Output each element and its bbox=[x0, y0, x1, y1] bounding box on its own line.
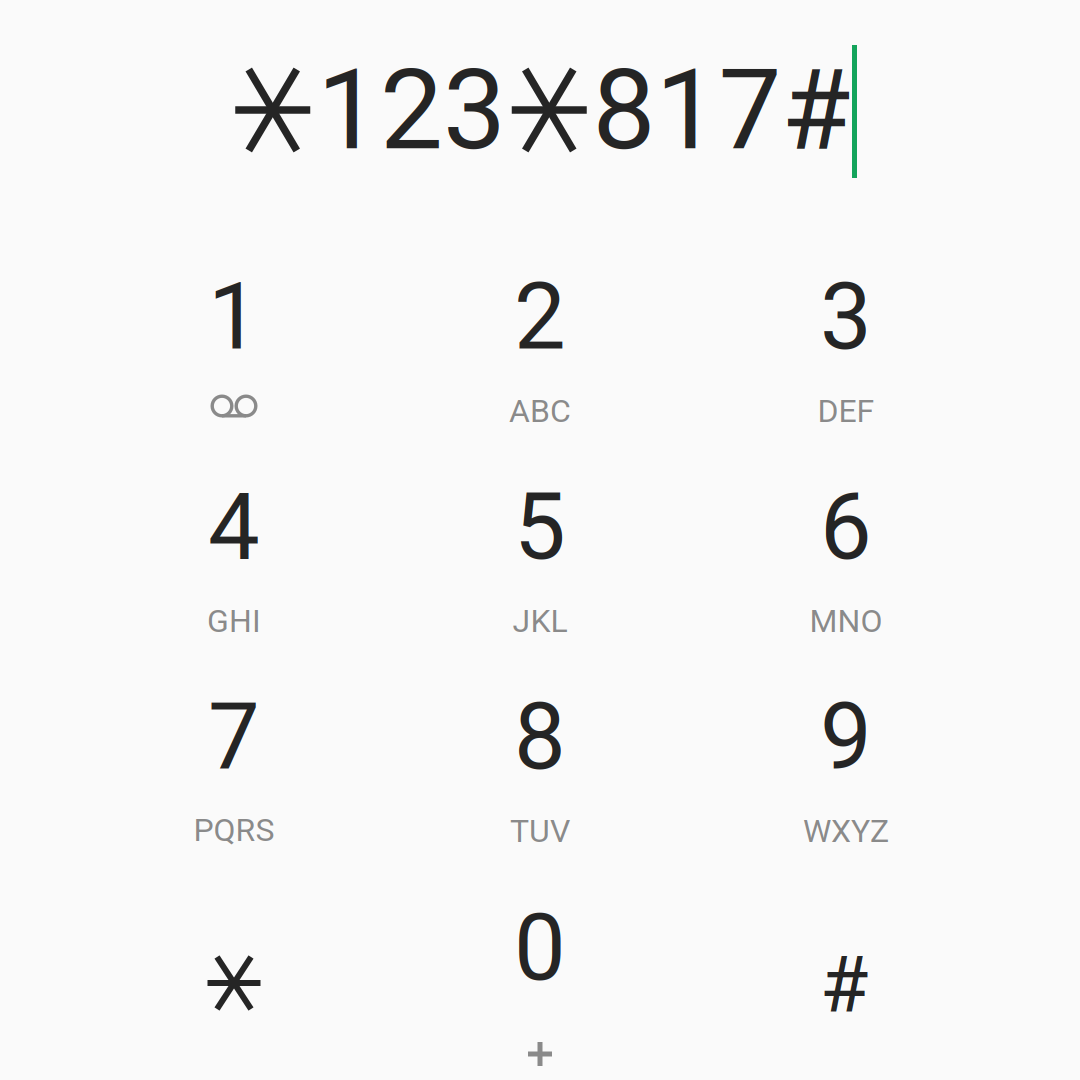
staticText: 7 bbox=[208, 683, 260, 791]
button[interactable]: 5 JKL bbox=[387, 423, 693, 633]
button[interactable]: 8 TUV bbox=[387, 633, 693, 843]
staticText: 4 bbox=[208, 473, 260, 581]
staticText: TUV bbox=[510, 812, 570, 850]
staticText: # bbox=[820, 939, 868, 1031]
button[interactable]: Pound bbox=[693, 843, 999, 1053]
staticText: 3 bbox=[820, 263, 872, 371]
staticText: MNO bbox=[809, 602, 882, 640]
button[interactable]: 0 Plus bbox=[387, 843, 693, 1053]
staticText: 1 bbox=[208, 263, 260, 371]
staticText: PQRS bbox=[193, 811, 274, 849]
staticText: 817# bbox=[592, 44, 850, 176]
staticText: 6 bbox=[820, 473, 872, 581]
staticText: ABC bbox=[509, 392, 571, 430]
button[interactable]: 3 DEF bbox=[693, 213, 999, 423]
button[interactable]: 6 MNO bbox=[693, 423, 999, 633]
staticText: 0 bbox=[514, 894, 566, 1002]
staticText: 9 bbox=[820, 683, 872, 791]
staticText: JKL bbox=[512, 602, 567, 640]
staticText: WXYZ bbox=[803, 812, 889, 850]
button[interactable]: 1 Voicemail bbox=[81, 213, 387, 423]
button[interactable]: 7 PQRS bbox=[81, 633, 387, 843]
button[interactable]: Star bbox=[81, 843, 387, 1053]
staticText: GHI bbox=[207, 602, 261, 640]
staticText: 2 bbox=[514, 263, 566, 371]
button[interactable]: 2 ABC bbox=[387, 213, 693, 423]
button[interactable]: 9 WXYZ bbox=[693, 633, 999, 843]
staticText: 5 bbox=[514, 473, 566, 581]
staticText: DEF bbox=[817, 392, 874, 430]
staticText: 123 bbox=[317, 44, 506, 176]
staticText: 8 bbox=[514, 683, 566, 791]
button[interactable]: 4 GHI bbox=[81, 423, 387, 633]
